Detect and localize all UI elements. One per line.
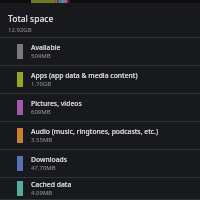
staticText: Available bbox=[31, 43, 61, 52]
staticText: Pictures, videos bbox=[31, 99, 82, 108]
button[interactable]: Audio (music, ringtones, podcasts, etc.) bbox=[0, 122, 200, 150]
staticText: 12.92GB bbox=[8, 26, 32, 34]
staticText: Audio (music, ringtones, podcasts, etc.) bbox=[31, 127, 159, 136]
button[interactable]: Pictures, videos bbox=[0, 94, 200, 122]
staticText: 609MB bbox=[31, 108, 51, 116]
staticText: Apps (app data & media content) bbox=[31, 71, 138, 80]
button[interactable]: Apps (app data & media content) bbox=[0, 66, 200, 94]
staticText: Downloads bbox=[31, 155, 68, 164]
staticText: 504MB bbox=[31, 52, 51, 60]
staticText: 3.55MB bbox=[31, 136, 53, 144]
button[interactable]: Available bbox=[0, 38, 200, 66]
staticText: 47.70MB bbox=[31, 164, 56, 172]
button[interactable]: Cached data bbox=[0, 178, 200, 200]
staticText: 4.09MB bbox=[31, 189, 53, 197]
staticText: Cached data bbox=[31, 180, 72, 189]
button[interactable]: Downloads bbox=[0, 150, 200, 178]
staticText: 1.70GB bbox=[31, 80, 52, 88]
staticText: Total space bbox=[8, 13, 54, 25]
button[interactable]: Total space bbox=[8, 13, 200, 34]
